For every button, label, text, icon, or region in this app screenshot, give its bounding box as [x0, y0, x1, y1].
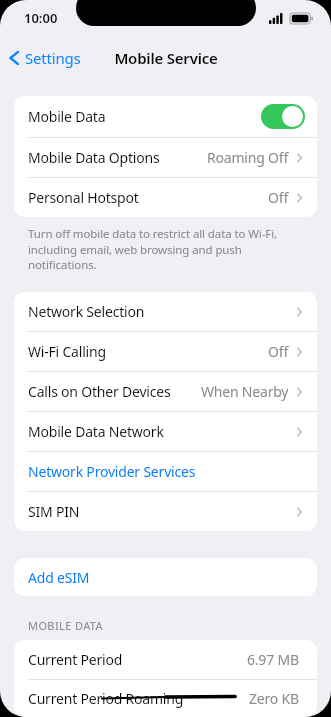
button[interactable]: Network Provider Services [14, 452, 317, 491]
staticText: Mobile Service [114, 48, 218, 68]
staticText: Network Provider Services [28, 462, 196, 481]
staticText: Current Period [28, 650, 123, 669]
staticText: When Nearby [201, 382, 289, 401]
staticText: Mobile Data Network [28, 422, 164, 441]
staticText: Calls on Other Devices [28, 382, 171, 401]
staticText: Add eSIM [28, 568, 90, 587]
button[interactable]: Add eSIM [14, 558, 317, 596]
button[interactable]: Personal Hotspot [14, 178, 317, 217]
staticText: Network Selection [28, 302, 145, 321]
staticText: Mobile Data [28, 107, 106, 126]
button[interactable]: SIM PIN [14, 492, 317, 531]
button[interactable]: Mobile Data toggle [261, 104, 305, 129]
staticText: MOBILE DATA [28, 618, 104, 633]
staticText: Mobile Data Options [28, 148, 160, 167]
staticText: Wi-Fi Calling [28, 342, 106, 361]
staticText: Personal Hotspot [28, 188, 139, 207]
button[interactable]: Wi-Fi Calling [14, 332, 317, 371]
staticText: Settings [25, 48, 81, 68]
button[interactable]: Mobile Data Network [14, 412, 317, 451]
button[interactable]: Current Period Roaming [14, 680, 317, 717]
staticText: Current Period Roaming [28, 689, 184, 708]
button[interactable]: Network Selection [14, 292, 317, 331]
button[interactable]: Settings [0, 44, 89, 72]
staticText: 6.97 MB [247, 650, 299, 669]
button[interactable]: Mobile Data Options [14, 138, 317, 177]
button[interactable]: Current Period [14, 640, 317, 679]
staticText: Zero KB [249, 689, 299, 708]
staticText: SIM PIN [28, 502, 80, 521]
staticText: Off [268, 188, 289, 207]
button[interactable]: Mobile Data [14, 96, 317, 137]
staticText: Turn off mobile data to restrict all dat… [28, 226, 301, 272]
staticText: Off [268, 342, 289, 361]
button[interactable]: Calls on Other Devices [14, 372, 317, 411]
staticText: Roaming Off [207, 148, 289, 167]
staticText: 10:00 [24, 9, 58, 27]
